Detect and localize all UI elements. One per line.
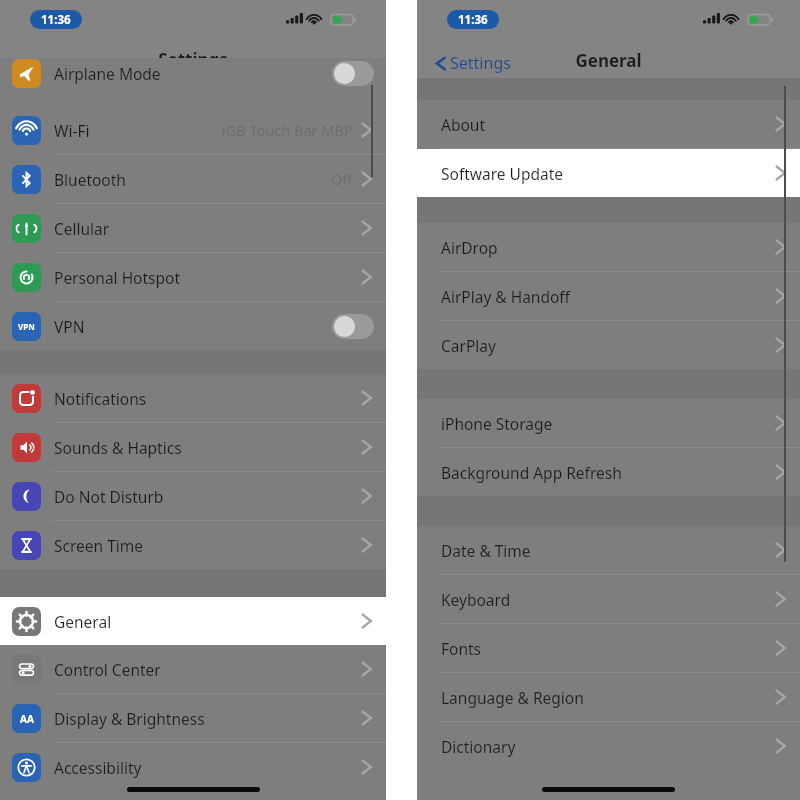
button[interactable] <box>332 61 374 86</box>
button[interactable]: Fonts <box>417 624 800 672</box>
button[interactable]: Bluetooth <box>0 155 386 203</box>
staticText: Dictionary <box>441 736 774 757</box>
button[interactable]: Language & Region <box>417 673 800 721</box>
staticText: AirDrop <box>441 237 774 258</box>
staticText: Bluetooth <box>54 169 331 190</box>
staticText: Wi-Fi <box>54 120 222 141</box>
staticText: 11:36 <box>458 12 488 28</box>
staticText: About <box>441 114 774 135</box>
button[interactable]: Sounds & Haptics <box>0 423 386 471</box>
staticText: iGB Touch Bar MBP <box>222 120 353 140</box>
staticText: AirPlay & Handoff <box>441 286 774 307</box>
staticText: Date & Time <box>441 540 774 561</box>
staticText: Accessibility <box>54 757 360 778</box>
button[interactable]: iPhone Storage <box>417 399 800 447</box>
button[interactable]: VPN <box>0 302 386 350</box>
button[interactable]: General <box>0 597 386 645</box>
staticText: VPN <box>18 321 35 332</box>
staticText: Airplane Mode <box>54 63 332 84</box>
button[interactable]: Screen Time <box>0 521 386 569</box>
button[interactable]: Settings <box>429 46 517 80</box>
staticText: Off <box>331 169 353 189</box>
staticText: Cellular <box>54 218 360 239</box>
button[interactable]: AA <box>0 694 386 742</box>
button[interactable]: Wi-Fi <box>0 106 386 154</box>
button[interactable]: Do Not Disturb <box>0 472 386 520</box>
button[interactable]: Keyboard <box>417 575 800 623</box>
button[interactable]: CarPlay <box>417 321 800 369</box>
staticText: Do Not Disturb <box>54 486 360 507</box>
staticText: Settings <box>450 52 511 74</box>
button[interactable]: Notifications <box>0 374 386 422</box>
staticText: Language & Region <box>441 687 774 708</box>
staticText: Sounds & Haptics <box>54 437 360 458</box>
button[interactable]: Accessibility <box>0 743 386 791</box>
staticText: Personal Hotspot <box>54 267 360 288</box>
staticText: Keyboard <box>441 589 774 610</box>
button[interactable]: Personal Hotspot <box>0 253 386 301</box>
button[interactable]: Background App Refresh <box>417 448 800 496</box>
staticText: Screen Time <box>54 535 360 556</box>
button[interactable]: Dictionary <box>417 722 800 770</box>
staticText: Display & Brightness <box>54 708 360 729</box>
staticText: General <box>417 49 800 72</box>
staticText: Fonts <box>441 638 774 659</box>
button[interactable]: Airplane Mode <box>0 58 386 88</box>
button[interactable]: Control Center <box>0 645 386 693</box>
staticText: 11:36 <box>41 12 71 28</box>
staticText: General <box>54 611 360 632</box>
button[interactable]: AirDrop <box>417 223 800 271</box>
button[interactable]: About <box>417 100 800 148</box>
button[interactable]: Cellular <box>0 204 386 252</box>
staticText: Software Update <box>441 163 774 184</box>
staticText: iPhone Storage <box>441 413 774 434</box>
button[interactable]: Software Update <box>417 149 800 197</box>
staticText: CarPlay <box>441 335 774 356</box>
button[interactable]: AirPlay & Handoff <box>417 272 800 320</box>
staticText: Notifications <box>54 388 360 409</box>
staticText: Control Center <box>54 659 360 680</box>
button[interactable] <box>332 314 374 339</box>
staticText: AA <box>20 712 34 726</box>
staticText: Background App Refresh <box>441 462 774 483</box>
staticText: VPN <box>54 316 332 337</box>
staticText: Settings <box>0 48 386 71</box>
button[interactable]: Date & Time <box>417 526 800 574</box>
